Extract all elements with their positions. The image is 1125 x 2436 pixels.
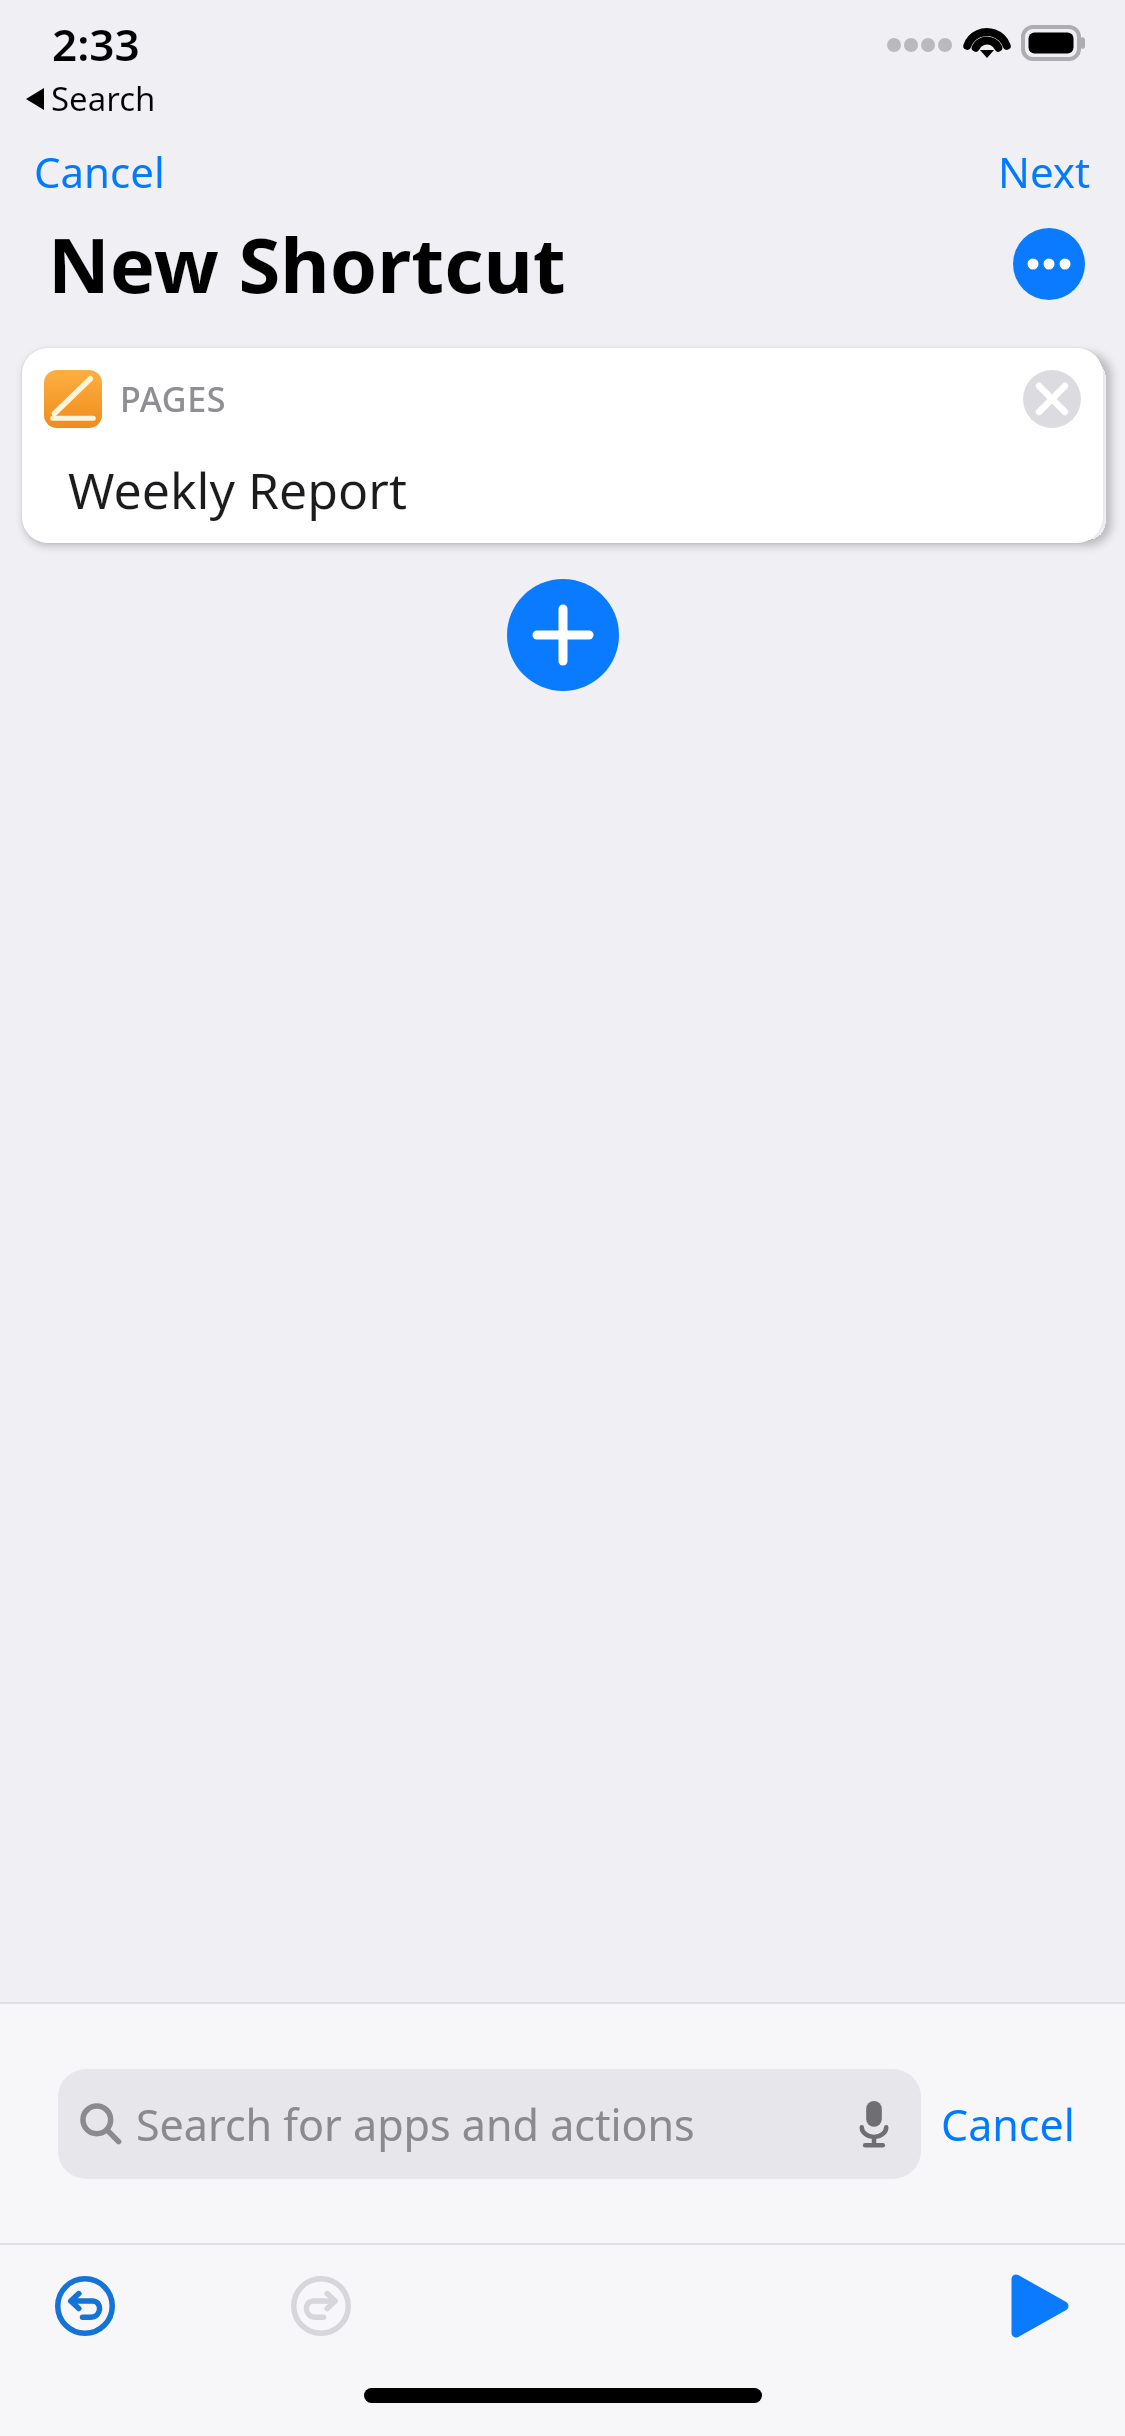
staticText: Cancel: [941, 2095, 1075, 2154]
staticText: Cancel: [34, 143, 165, 200]
button[interactable]: Undo: [52, 2273, 118, 2339]
button[interactable]: More options: [1013, 228, 1085, 300]
button[interactable]: Remove action: [1023, 370, 1081, 428]
button[interactable]: Cancel: [921, 2083, 1095, 2166]
button[interactable]: PAGES: [22, 348, 1103, 543]
staticText: Next: [998, 143, 1091, 200]
button[interactable]: Add action: [507, 579, 619, 691]
button[interactable]: Redo: [288, 2273, 354, 2339]
staticText: Weekly Report: [68, 456, 407, 524]
button[interactable]: Back to Search: [26, 76, 156, 121]
staticText: PAGES: [120, 376, 226, 422]
button[interactable]: Run shortcut: [1003, 2269, 1077, 2343]
staticText: Search for apps and actions: [136, 2095, 849, 2154]
button[interactable]: Next: [982, 133, 1107, 210]
button[interactable]: Cancel: [18, 133, 181, 210]
staticText: New Shortcut: [48, 212, 566, 316]
button[interactable]: Voice search: [849, 2099, 899, 2149]
staticText: 2:33: [52, 14, 140, 74]
staticText: Search: [51, 76, 156, 121]
button[interactable]: Search for apps and actions: [58, 2069, 921, 2179]
